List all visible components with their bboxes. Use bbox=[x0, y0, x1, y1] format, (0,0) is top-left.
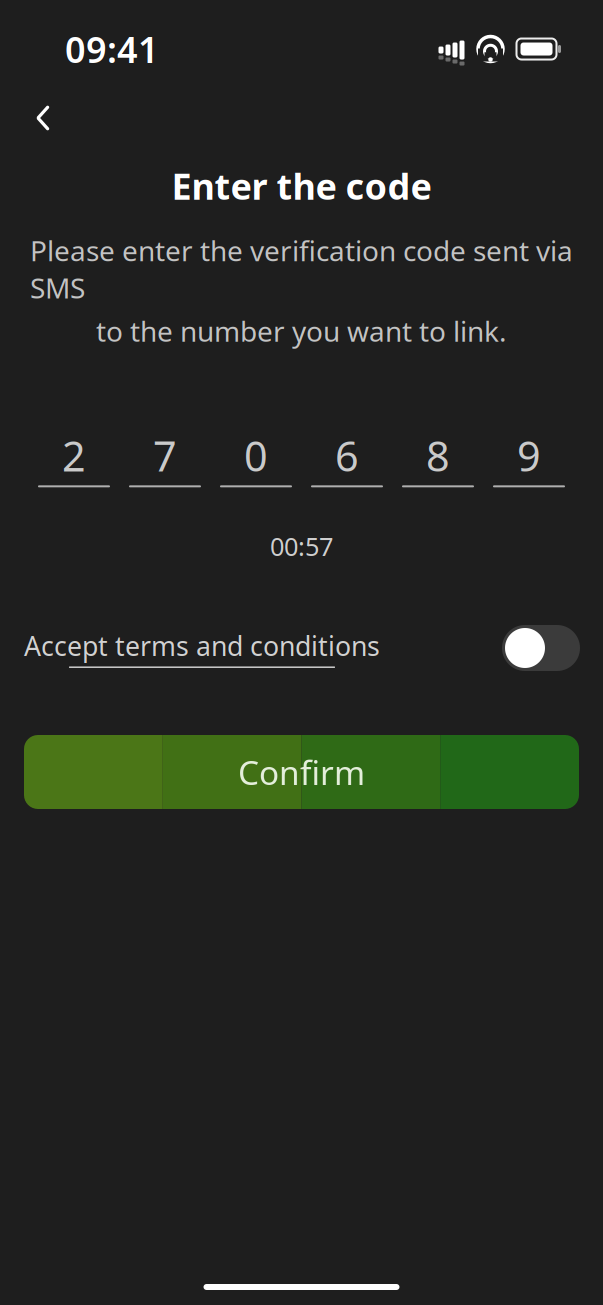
button[interactable]: Confirm bbox=[24, 735, 579, 809]
staticText: Please enter the verification code sent … bbox=[30, 232, 573, 306]
staticText: 0 bbox=[244, 428, 268, 483]
button[interactable]: Back bbox=[14, 90, 72, 146]
button[interactable]: 8 bbox=[402, 433, 474, 487]
staticText: 2 bbox=[62, 428, 86, 483]
staticText: 6 bbox=[335, 428, 359, 483]
staticText: Confirm bbox=[238, 750, 365, 794]
button[interactable]: 0 bbox=[220, 433, 292, 487]
staticText: 00:57 bbox=[270, 529, 333, 563]
button[interactable]: 2 bbox=[38, 433, 110, 487]
button[interactable]: 7 bbox=[129, 433, 201, 487]
staticText: Enter the code bbox=[171, 162, 431, 210]
staticText: 8 bbox=[426, 428, 450, 483]
staticText: 9 bbox=[517, 428, 541, 483]
staticText: to the number you want to link. bbox=[96, 312, 507, 349]
staticText: Accept terms and conditions bbox=[24, 628, 380, 663]
button[interactable]: Accept terms and conditions bbox=[24, 628, 380, 668]
staticText: 09:41 bbox=[65, 25, 159, 73]
staticText: 7 bbox=[153, 428, 177, 483]
button[interactable]: 6 bbox=[311, 433, 383, 487]
button[interactable]: 9 bbox=[493, 433, 565, 487]
button[interactable]: Accept terms and conditions toggle bbox=[502, 625, 580, 671]
